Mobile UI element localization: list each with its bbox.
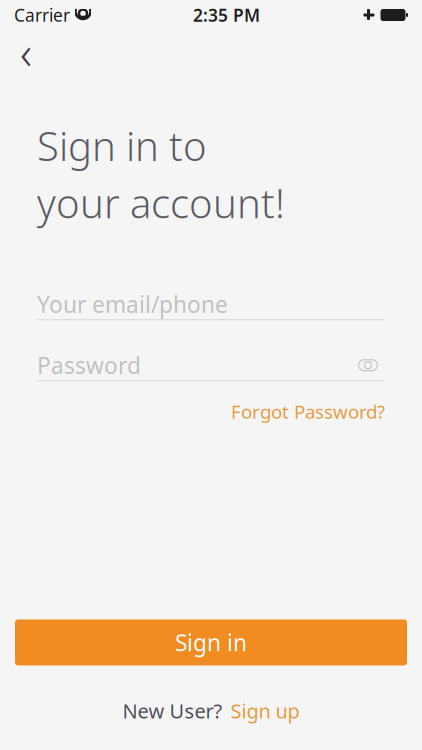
staticText: Sign in to <box>37 119 207 172</box>
button[interactable]: Show password <box>351 350 385 380</box>
staticText: your account! <box>37 176 285 229</box>
button[interactable]: Forgot Password? <box>231 393 385 430</box>
staticText: Forgot Password? <box>231 399 385 424</box>
staticText: Your email/phone <box>37 289 228 319</box>
button[interactable]: Back <box>4 30 48 74</box>
staticText: 2:35 PM <box>193 3 260 26</box>
staticText: ‹ <box>20 22 32 82</box>
button[interactable]: Sign up <box>230 697 299 724</box>
button[interactable]: Sign in <box>15 619 407 665</box>
staticText: New User? <box>122 697 222 724</box>
staticText: Carrier <box>14 3 70 26</box>
staticText: Sign up <box>230 697 299 724</box>
staticText: Sign in <box>175 627 247 657</box>
staticText: Password <box>37 350 141 380</box>
